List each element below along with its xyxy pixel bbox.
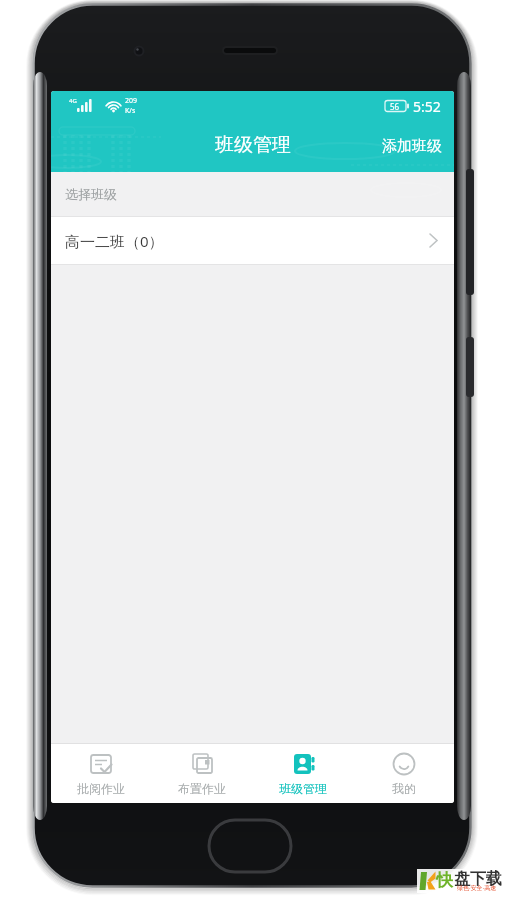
button[interactable]: 快 [417,869,506,893]
staticText: 209 [125,96,138,106]
staticText: 快 [436,870,453,891]
staticText: 班级管理 [215,133,291,157]
staticText: 添加班级 [382,137,442,156]
button[interactable]: 高一二班（0） [51,217,454,264]
staticText: 班级管理 [279,781,327,796]
button[interactable]: 批阅作业 [51,744,151,803]
staticText: 4G [69,97,77,105]
button[interactable]: 布置作业 [151,744,252,803]
staticText: 绿色·安全·高速 [457,884,497,892]
staticText: 高一二班（0） [65,231,164,251]
staticText: 我的 [392,781,416,796]
staticText: K/s [125,106,136,116]
staticText: 批阅作业 [77,781,125,796]
staticText: 5:52 [413,97,441,116]
button[interactable]: 添加班级 [376,131,448,162]
staticText: 盘下载 [454,869,502,889]
staticText: 选择班级 [65,186,117,202]
button[interactable]: 我的 [353,744,454,803]
staticText: 56 [390,101,400,112]
staticText: 布置作业 [178,781,226,796]
button[interactable]: 班级管理 [252,744,353,803]
